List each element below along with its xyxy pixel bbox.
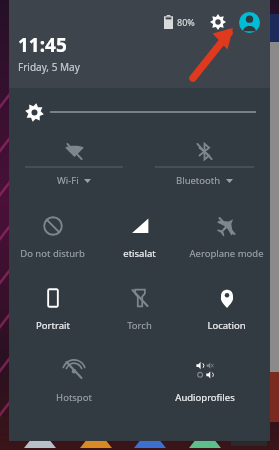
- staticText: etisalat: [123, 247, 156, 260]
- staticText: Do not disturb: [20, 247, 85, 260]
- staticText: Location: [207, 319, 246, 332]
- button[interactable]: Portrait: [9, 270, 96, 332]
- button[interactable]: Torch: [96, 270, 183, 332]
- button[interactable]: Hotspot: [9, 342, 139, 404]
- button[interactable]: Brightness: [9, 88, 270, 136]
- staticText: 11:45: [18, 32, 67, 58]
- staticText: Bluetooth: [176, 174, 221, 187]
- button[interactable]: Wi-Fi: [9, 136, 139, 187]
- button[interactable]: etisalat: [96, 198, 183, 260]
- staticText: Friday, 5 May: [18, 60, 80, 74]
- button[interactable]: Location: [183, 270, 270, 332]
- button[interactable]: Settings: [208, 12, 228, 32]
- staticText: Hotspot: [56, 391, 92, 404]
- button[interactable]: Audioprofiles: [139, 342, 270, 404]
- button[interactable]: Bluetooth: [139, 136, 270, 187]
- button[interactable]: Do not disturb: [9, 198, 96, 260]
- staticText: 80%: [177, 16, 195, 28]
- staticText: Portrait: [36, 319, 70, 332]
- staticText: Torch: [127, 319, 152, 332]
- button[interactable]: User profile: [238, 11, 260, 33]
- staticText: Wi-Fi: [57, 174, 79, 187]
- button[interactable]: Aeroplane mode: [183, 198, 270, 260]
- staticText: Aeroplane mode: [189, 247, 264, 260]
- staticText: Audioprofiles: [175, 391, 235, 404]
